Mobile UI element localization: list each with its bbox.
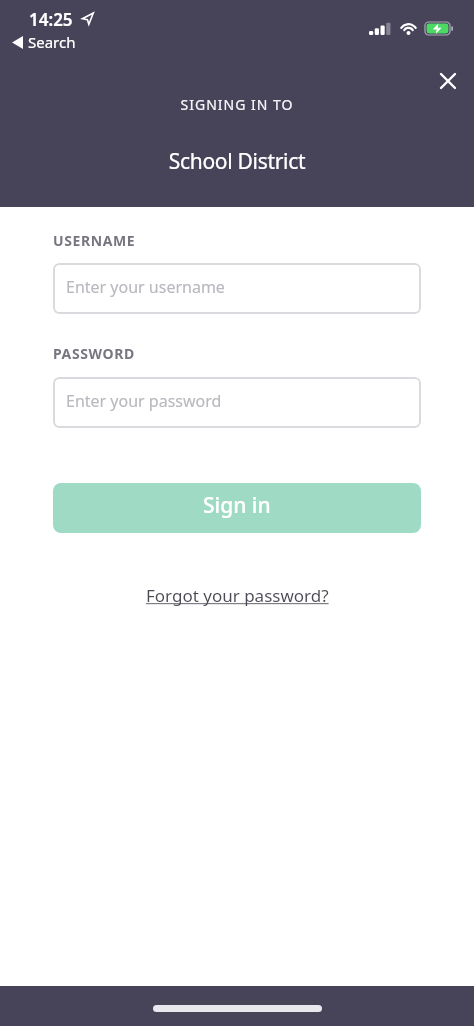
button[interactable]: Enter your password [53,377,421,428]
staticText: Enter your username [66,276,225,298]
staticText: Search [28,32,76,52]
button[interactable] [434,67,462,95]
staticText: SIGNING IN TO [0,95,474,114]
staticText: Sign in [203,491,271,520]
button[interactable]: Forgot your password? [146,584,329,607]
button[interactable]: Enter your username [53,263,421,314]
button[interactable]: Search [12,32,76,52]
staticText: PASSWORD [53,344,135,363]
staticText: School District [0,147,474,176]
staticText: Enter your password [66,390,222,412]
staticText: USERNAME [53,231,136,250]
staticText: 14:25 [29,8,73,31]
button[interactable]: Sign in [53,483,421,533]
